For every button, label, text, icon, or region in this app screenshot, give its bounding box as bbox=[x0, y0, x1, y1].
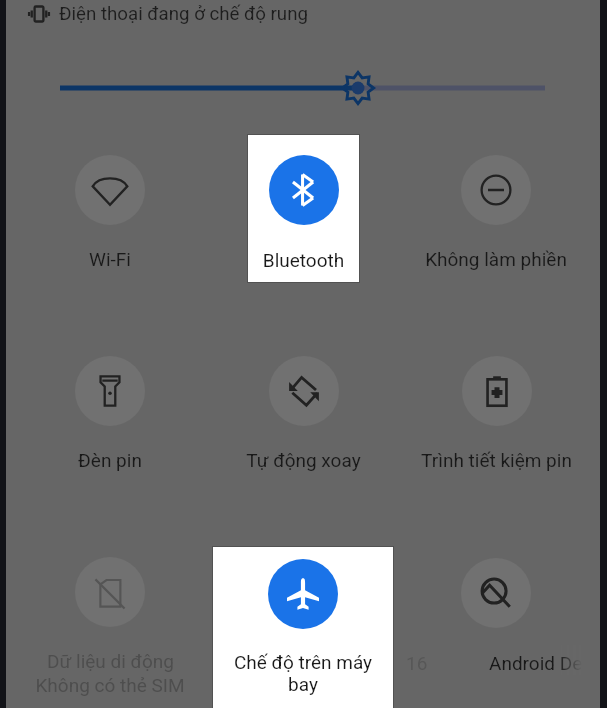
button[interactable]: Battery saver bbox=[403, 356, 589, 526]
button[interactable]: Bluetooth bbox=[248, 135, 359, 282]
button[interactable]: Do not disturb bbox=[403, 155, 589, 325]
button[interactable]: Brightness bbox=[60, 80, 545, 96]
button[interactable]: Mobile data bbox=[17, 557, 203, 708]
other: Auto rotate bbox=[269, 356, 339, 426]
staticText: Không làm phiền bbox=[425, 248, 567, 270]
button[interactable]: Airplane mode bbox=[213, 547, 393, 708]
other: Android Debug bbox=[461, 558, 531, 628]
staticText: Dữ liệu di động bbox=[47, 650, 174, 672]
button[interactable]: Wi-Fi bbox=[17, 155, 203, 325]
staticText: Chế độ trên máy bay bbox=[220, 651, 386, 696]
other: Bluetooth bbox=[269, 155, 339, 225]
staticText: Android Debug bbox=[489, 652, 607, 674]
staticText: Điện thoại đang ở chế độ rung bbox=[59, 3, 308, 25]
other: Flashlight bbox=[75, 356, 145, 426]
other: Do not disturb bbox=[461, 155, 531, 225]
staticText: Trình tiết kiệm pin bbox=[421, 449, 572, 471]
button[interactable]: Flashlight bbox=[17, 356, 203, 526]
other: Mobile data bbox=[75, 557, 145, 627]
button[interactable]: Android Debug bbox=[403, 557, 607, 708]
other: Battery saver bbox=[462, 356, 532, 426]
staticText: Tự động xoay bbox=[246, 449, 361, 471]
staticText: Wi-Fi bbox=[89, 248, 131, 270]
staticText: Bluetooth bbox=[255, 249, 352, 271]
button[interactable]: Điện thoại đang ở chế độ rung bbox=[28, 3, 308, 25]
button[interactable]: Auto rotate bbox=[210, 356, 396, 526]
staticText: 16 bbox=[406, 652, 428, 674]
staticText: Đèn pin bbox=[78, 449, 142, 471]
other: Wi-Fi bbox=[75, 155, 145, 225]
other: Airplane mode bbox=[268, 559, 338, 629]
staticText: Không có thẻ SIM bbox=[35, 674, 185, 696]
